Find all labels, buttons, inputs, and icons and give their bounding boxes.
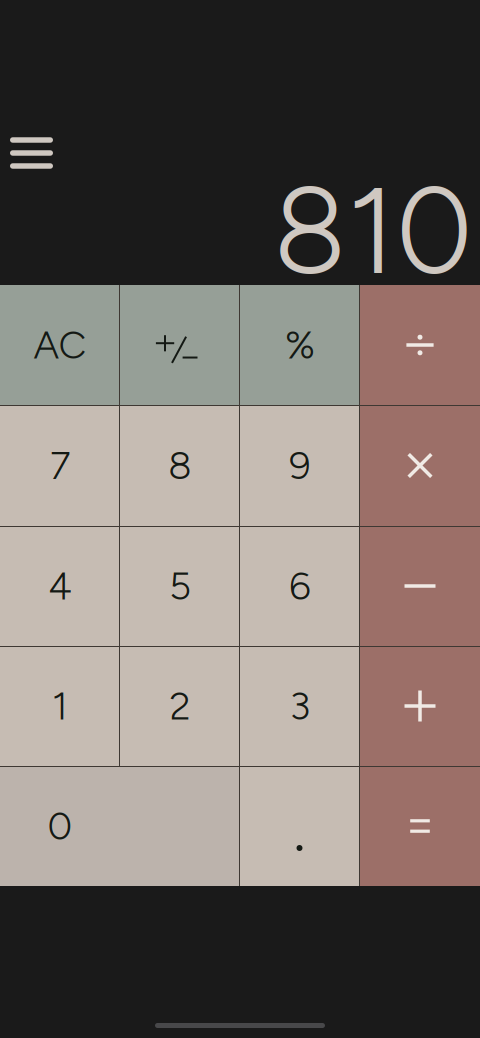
button[interactable]: AC — [0, 285, 120, 405]
staticText: AC — [33, 322, 86, 368]
staticText: % — [285, 322, 315, 368]
button[interactable]: 6 — [240, 526, 360, 646]
button[interactable]: Menu — [10, 137, 53, 169]
button[interactable]: 8 — [120, 405, 240, 526]
staticText: 2 — [169, 683, 190, 729]
staticText: 9 — [289, 442, 311, 489]
button[interactable]: 9 — [240, 405, 360, 526]
button[interactable]: 5 — [120, 526, 240, 646]
button[interactable]: Subtract — [360, 526, 480, 646]
staticText: 0 — [47, 803, 72, 849]
button[interactable]: Divide — [360, 285, 480, 405]
staticText: 4 — [48, 563, 72, 609]
button[interactable]: 2 — [120, 646, 240, 766]
button[interactable]: % — [240, 285, 360, 405]
button[interactable]: 7 — [0, 405, 120, 526]
staticText: 810 — [273, 159, 473, 303]
staticText: 7 — [50, 442, 70, 489]
button[interactable]: Toggle sign — [120, 285, 240, 405]
staticText: 1 — [52, 683, 68, 729]
button[interactable]: Add — [360, 646, 480, 766]
button[interactable]: Multiply — [360, 405, 480, 526]
button[interactable]: Equals — [360, 766, 480, 886]
button[interactable]: 3 — [240, 646, 360, 766]
staticText: 6 — [289, 563, 311, 609]
button[interactable]: 0 — [0, 766, 240, 886]
staticText: 3 — [289, 683, 310, 729]
staticText: 5 — [169, 563, 191, 609]
button[interactable]: 4 — [0, 526, 120, 646]
button[interactable]: 1 — [0, 646, 120, 766]
button[interactable]: Decimal point — [240, 766, 360, 886]
staticText: 8 — [168, 442, 192, 489]
